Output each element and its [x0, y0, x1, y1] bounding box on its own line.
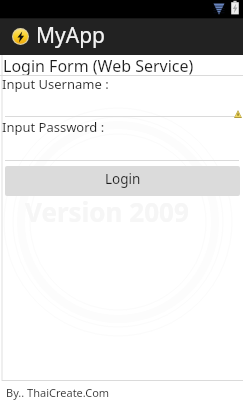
staticText: Login — [105, 170, 141, 188]
staticText: Input Password : — [2, 118, 105, 136]
button[interactable]: Login — [5, 166, 240, 196]
staticText: Version 2009 — [25, 194, 189, 229]
staticText: MyApp — [36, 21, 106, 50]
other: Username is required — [234, 110, 242, 118]
staticText: By.. ThaiCreate.Com — [6, 385, 110, 400]
button[interactable] — [5, 93, 239, 117]
button[interactable] — [5, 137, 239, 161]
other: MyApp icon — [12, 28, 29, 45]
staticText: Login Form (Web Service) — [3, 55, 194, 77]
staticText: ThaiCreate.Com — [22, 163, 228, 198]
staticText: Input Username : — [2, 75, 109, 93]
